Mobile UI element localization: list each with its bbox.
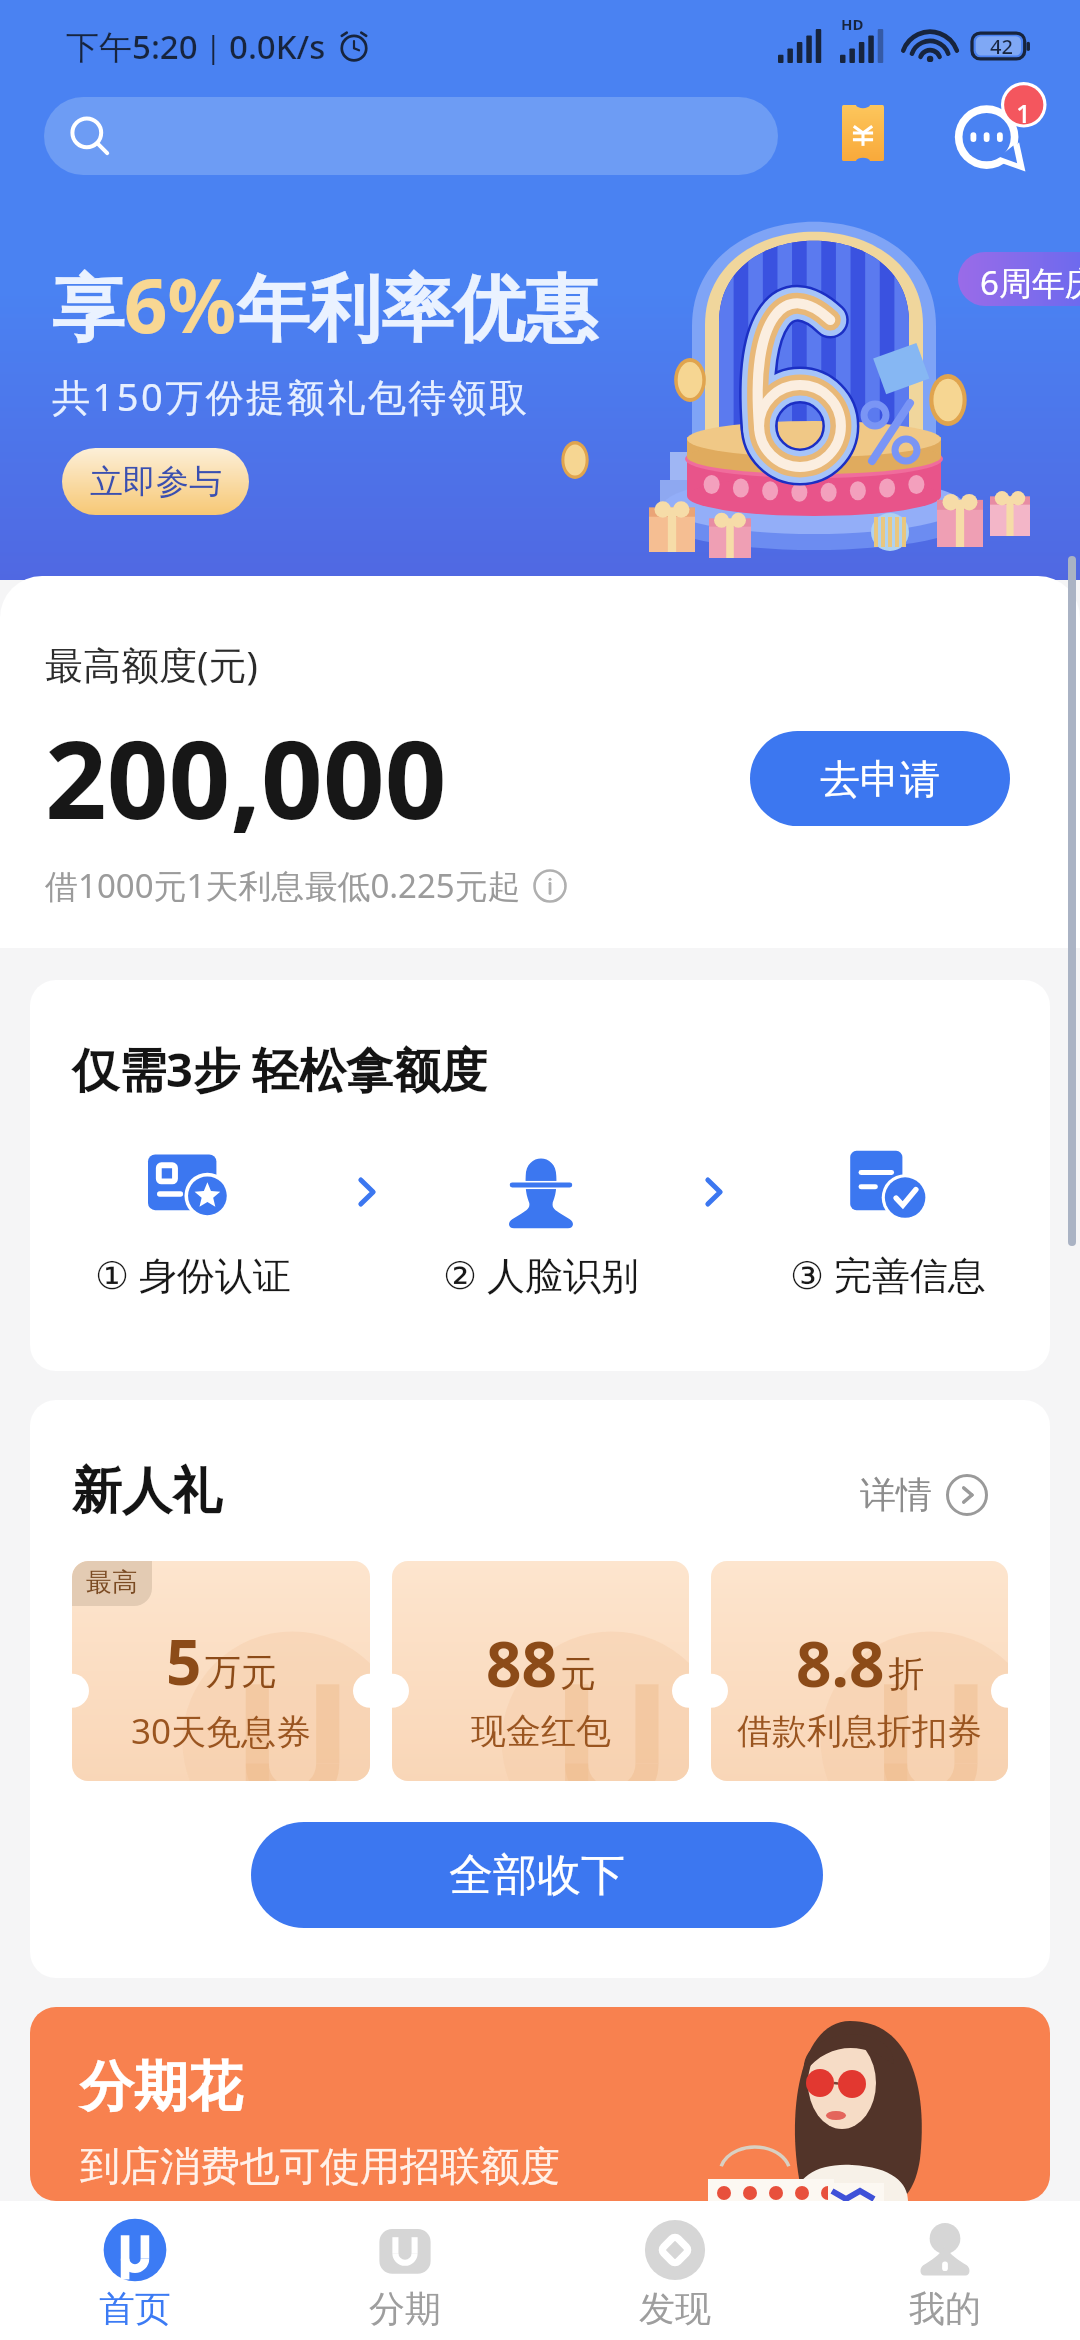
button[interactable]: 8.8 (711, 1561, 1008, 1781)
staticText: 200,000 (45, 704, 447, 851)
button[interactable]: 去申请 (750, 731, 1010, 826)
staticText: 分期花 (80, 2053, 242, 2121)
button[interactable]: Coupons (820, 90, 906, 176)
staticText: 首页 (99, 2286, 171, 2331)
button[interactable]: 分期花 (30, 2007, 1050, 2201)
staticText: 6周年庆 (980, 260, 1080, 305)
staticText: 现金红包 (471, 1709, 611, 1753)
button[interactable]: 首页 (0, 2201, 270, 2340)
button[interactable]: 详情 (860, 1472, 988, 1517)
button[interactable]: 立即参与 (62, 448, 249, 515)
staticText: 借1000元1天利息最低0.225元起 (45, 863, 521, 908)
staticText: 6% (124, 252, 237, 356)
staticText: 到店消费也可使用招联额度 (80, 2141, 560, 2191)
staticText: 折 (888, 1651, 924, 1696)
staticText: 8.8 (796, 1621, 885, 1705)
staticText: 1 (1016, 95, 1031, 130)
staticText: 88 (486, 1621, 557, 1705)
button[interactable]: 分期 (270, 2201, 540, 2340)
staticText: 元 (560, 1651, 596, 1696)
staticText: 借款利息折扣券 (737, 1709, 982, 1753)
button[interactable]: 发现 (540, 2201, 810, 2340)
staticText: 我的 (909, 2286, 981, 2331)
staticText: 详情 (860, 1472, 932, 1517)
button[interactable]: 5 (72, 1561, 370, 1781)
staticText: 分期 (369, 2286, 441, 2331)
button[interactable]: ① 身份认证 (30, 1140, 356, 1300)
button[interactable]: 88 (392, 1561, 689, 1781)
staticText: 享 (52, 265, 124, 356)
staticText: HD (841, 14, 864, 34)
staticText: 仅需3步 轻松拿额度 (72, 1037, 488, 1101)
staticText: 年利率优惠 (237, 265, 597, 356)
staticText: ② 人脸识别 (443, 1248, 639, 1300)
button[interactable]: 全部收下 (251, 1822, 823, 1928)
staticText: 发现 (639, 2286, 711, 2331)
staticText: 最高 (86, 1566, 138, 1599)
button[interactable]: ② 人脸识别 (378, 1140, 703, 1300)
staticText: 5 (166, 1619, 202, 1703)
button[interactable]: Messages (940, 82, 1046, 188)
button[interactable]: Search (44, 97, 778, 175)
staticText: 立即参与 (90, 461, 222, 503)
staticText: 30天免息券 (131, 1707, 312, 1755)
button[interactable]: ③ 完善信息 (725, 1140, 1050, 1300)
staticText: ③ 完善信息 (790, 1248, 986, 1300)
button[interactable]: 我的 (810, 2201, 1080, 2340)
staticText: 共150万份提额礼包待领取 (52, 370, 530, 422)
staticText: 万元 (205, 1649, 277, 1694)
staticText: 最高额度(元) (45, 638, 258, 690)
staticText: 0.0K/s (229, 24, 326, 69)
staticText: ① 身份认证 (95, 1248, 291, 1300)
staticText: 下午5:20 (66, 24, 198, 69)
staticText: | (205, 26, 222, 67)
staticText: 去申请 (820, 754, 940, 804)
staticText: 全部收下 (449, 1848, 625, 1903)
staticText: 新人礼 (72, 1460, 222, 1523)
staticText: 42 (990, 33, 1013, 60)
